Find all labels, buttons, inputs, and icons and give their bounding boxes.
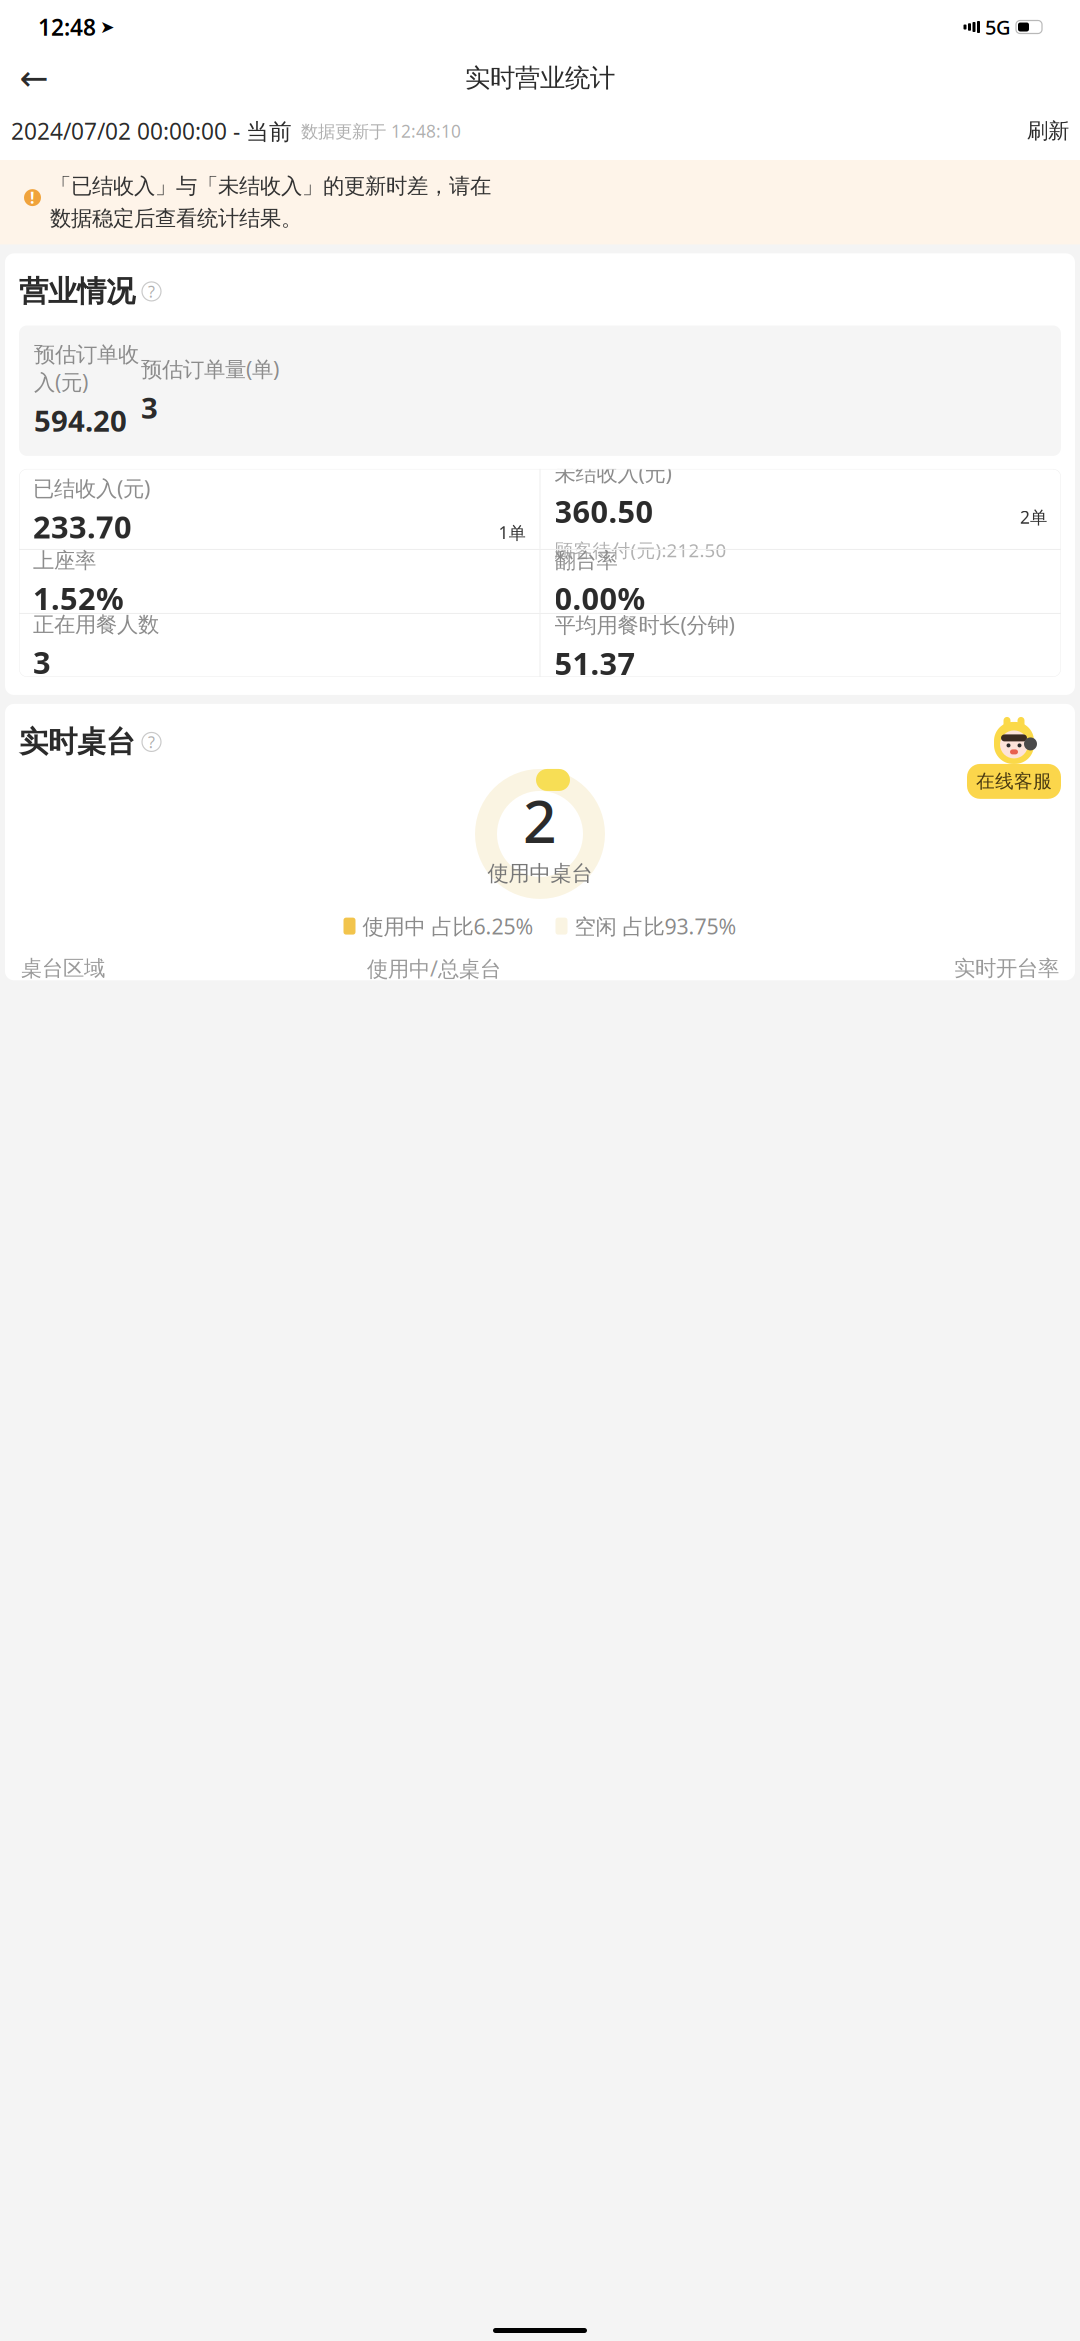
staticText: 3 <box>141 388 158 427</box>
staticText: 翻台率 <box>554 547 617 574</box>
staticText: 5G <box>985 14 1011 40</box>
staticText: 在线客服 <box>976 770 1052 793</box>
button[interactable]: 2024/07/02 00:00:00 - 当前 <box>11 116 292 146</box>
staticText: 3 <box>33 642 51 682</box>
button[interactable]: Help <box>142 281 161 302</box>
button[interactable]: Help <box>142 731 161 752</box>
staticText: 数据更新于 12:48:10 <box>301 119 461 142</box>
staticText: 平均用餐时长(分钟) <box>554 610 734 639</box>
staticText: 顾客待付(元):212.50 <box>554 538 726 562</box>
staticText: ! <box>30 187 35 208</box>
staticText: ➤ <box>100 17 115 37</box>
staticText: 360.50 <box>554 491 653 531</box>
staticText: 空闲 占比93.75% <box>574 912 736 940</box>
staticText: 594.20 <box>34 401 127 440</box>
button[interactable]: 刷新 <box>1027 118 1069 144</box>
staticText: 2024/07/02 00:00:00 - 当前 <box>11 116 292 146</box>
staticText: 预估订单收入(元) <box>34 341 139 396</box>
staticText: 预估订单量(单) <box>141 354 279 383</box>
staticText: ? <box>148 281 155 302</box>
staticText: 「已结收入」与「未结收入」的更新时差，请在 <box>50 173 491 199</box>
staticText: 1单 <box>498 521 525 544</box>
staticText: 已结收入(元) <box>33 474 150 502</box>
staticText: 233.70 <box>33 506 132 547</box>
staticText: 营业情况 <box>19 273 135 309</box>
staticText: ? <box>148 731 155 752</box>
staticText: 桌台区域 <box>21 955 105 981</box>
staticText: 0.00% <box>554 578 645 618</box>
staticText: 刷新 <box>1027 118 1069 144</box>
staticText: 2单 <box>1020 505 1047 528</box>
staticText: 使用中 占比6.25% <box>362 912 533 940</box>
staticText: 12:48 <box>38 12 96 42</box>
staticText: 上座率 <box>33 547 96 574</box>
staticText: 正在用餐人数 <box>33 611 159 638</box>
staticText: 1.52% <box>33 578 124 618</box>
staticText: 使用中桌台 <box>487 860 592 886</box>
staticText: 51.37 <box>554 643 635 683</box>
staticText: 实时桌台 <box>19 724 135 760</box>
staticText: 使用中/总桌台 <box>367 954 501 982</box>
button[interactable]: 在线客服 <box>967 716 1061 799</box>
staticText: 实时营业统计 <box>465 62 615 93</box>
staticText: ← <box>19 58 48 98</box>
staticText: 数据稳定后查看统计结果。 <box>50 205 302 231</box>
button[interactable]: Back <box>12 56 56 100</box>
staticText: 未结收入(元) <box>554 458 671 487</box>
staticText: 2 <box>523 781 557 859</box>
staticText: 实时开台率 <box>954 955 1059 981</box>
